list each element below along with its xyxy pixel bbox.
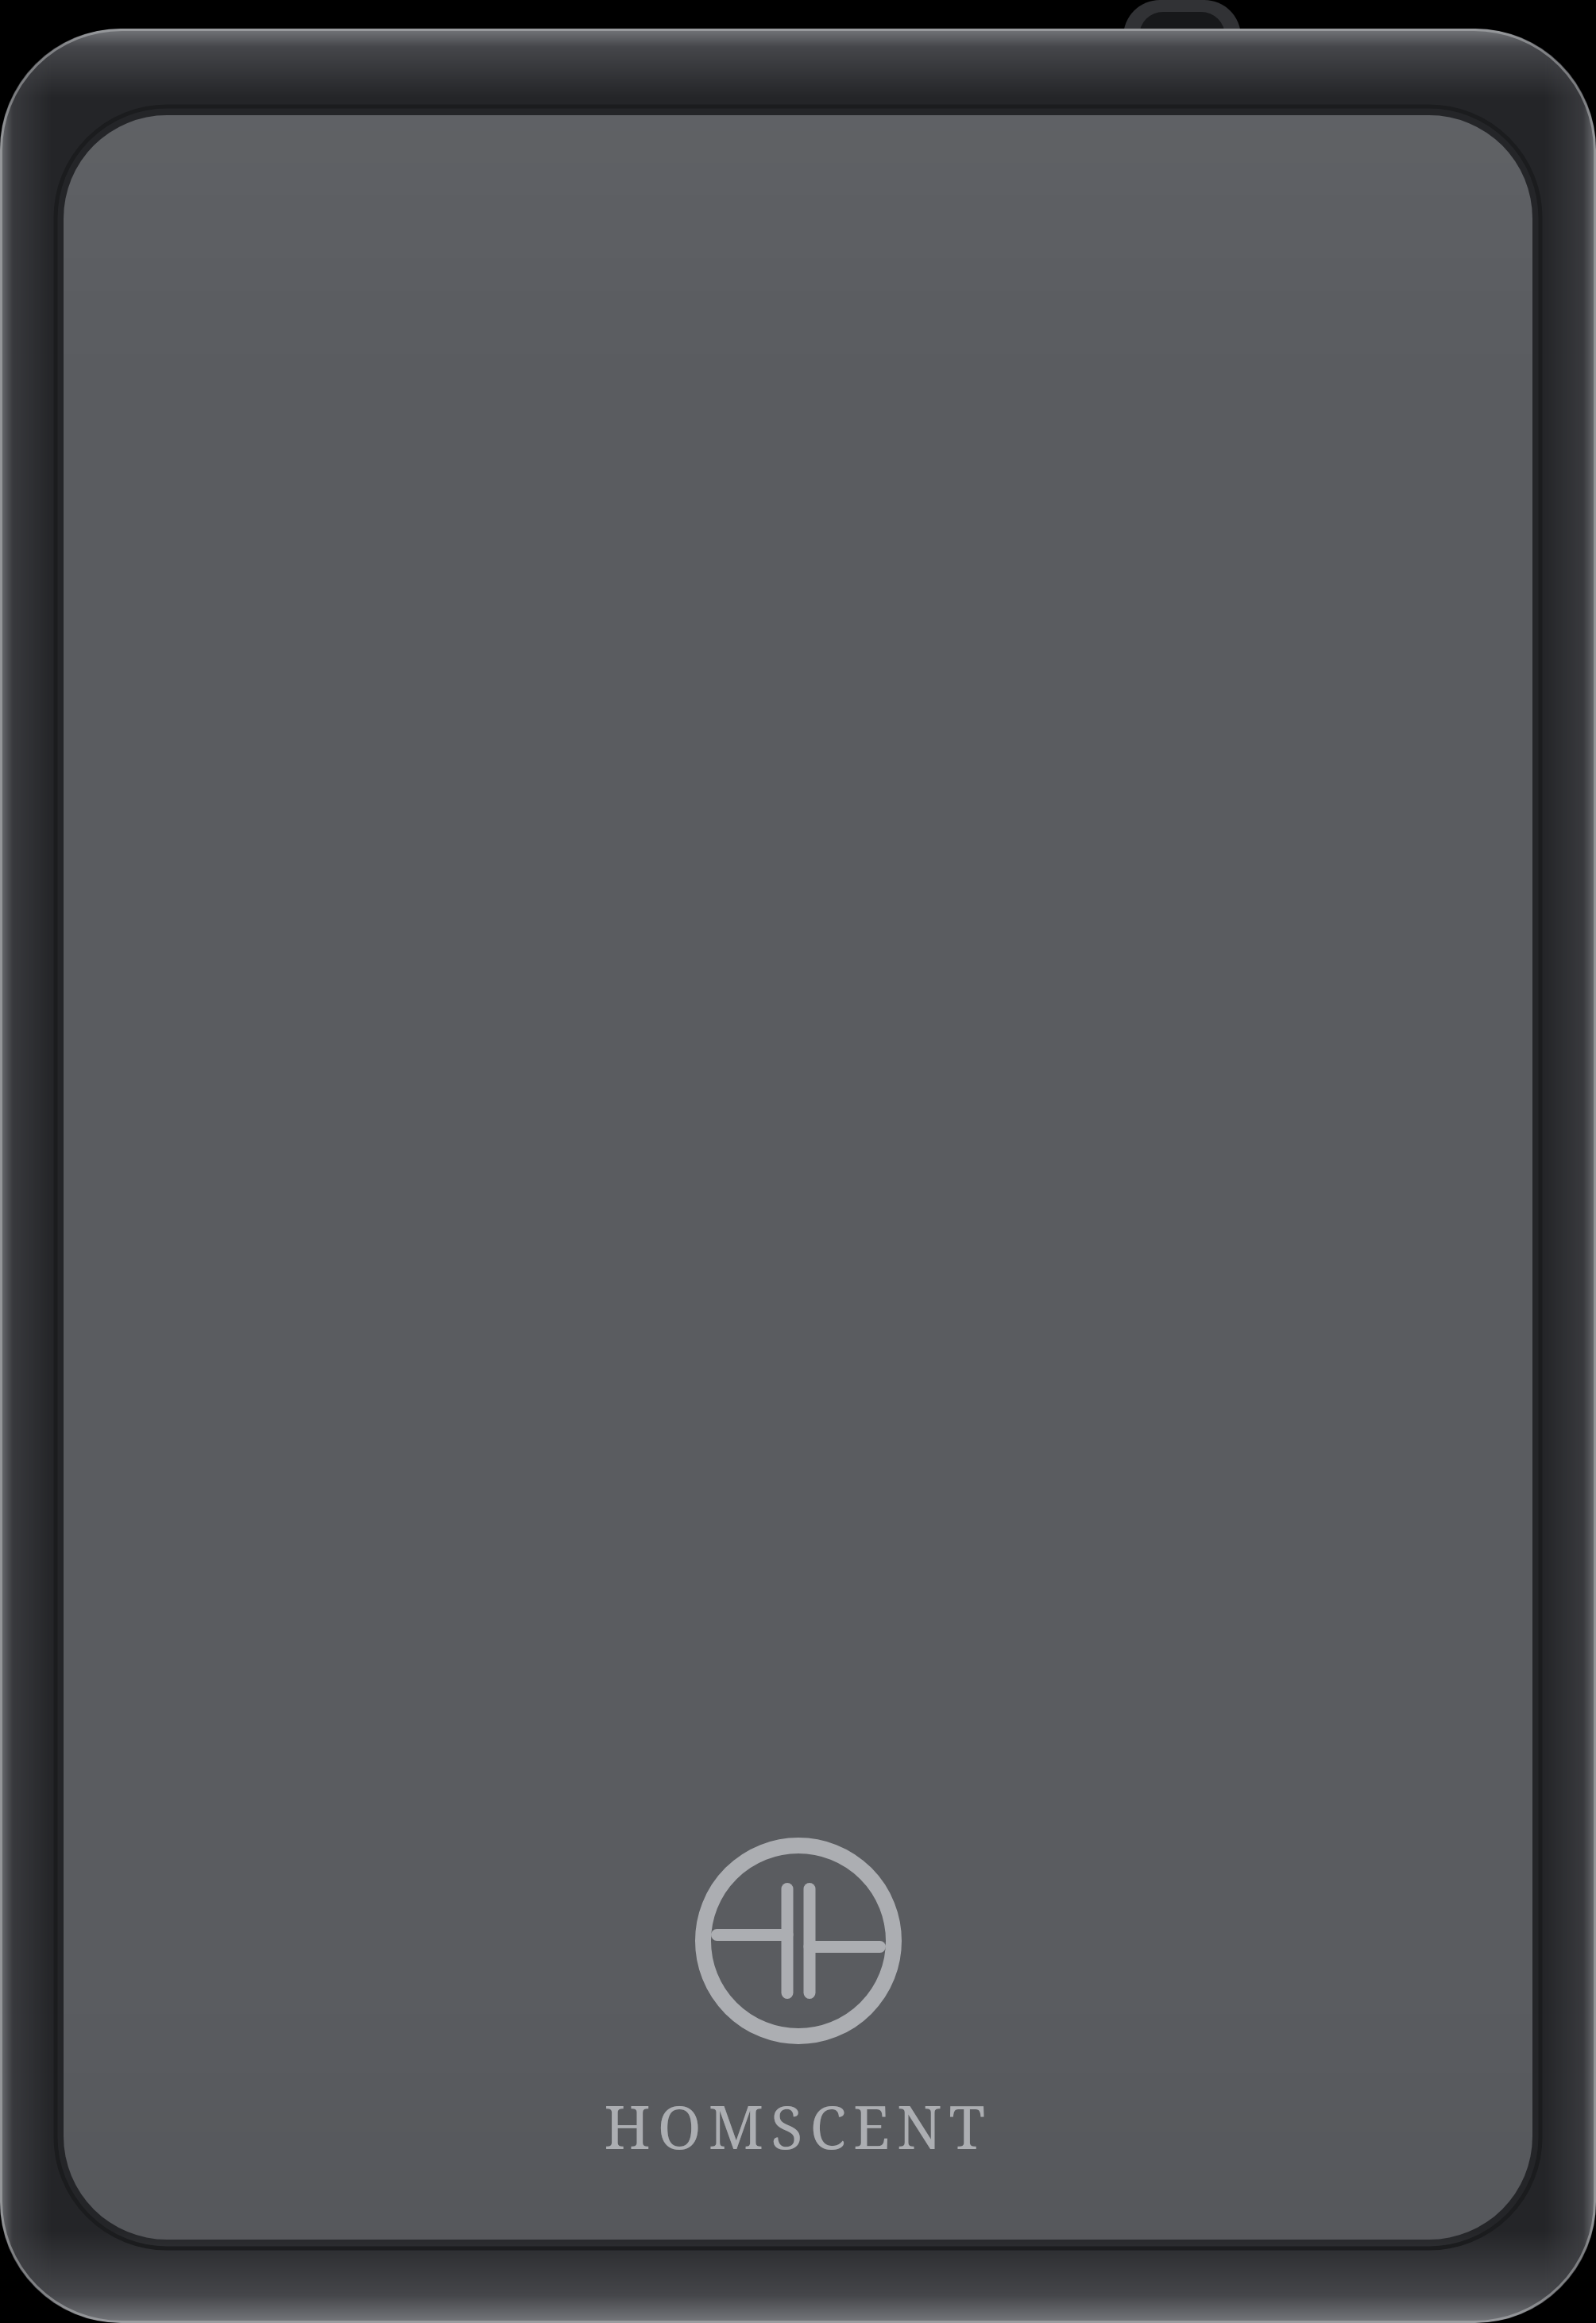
button[interactable]: Power button xyxy=(1123,0,1241,79)
staticText: HOMSCENT xyxy=(604,2086,992,2166)
button[interactable]: HOMSCENT logo xyxy=(604,1835,992,2166)
